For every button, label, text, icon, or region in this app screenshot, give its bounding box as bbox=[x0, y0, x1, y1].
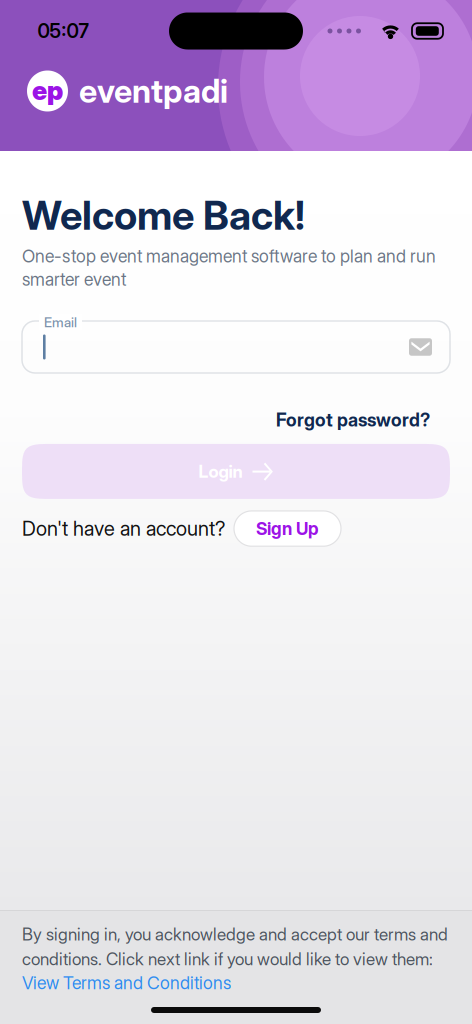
staticText: conditions. Click next link if you would… bbox=[22, 949, 433, 969]
staticText: ep bbox=[32, 75, 63, 106]
staticText: Welcome Back! bbox=[22, 191, 305, 239]
staticText: Sign Up bbox=[256, 518, 319, 539]
staticText: One-stop event management software to pl… bbox=[22, 245, 436, 267]
staticText: Don't have an account? bbox=[22, 516, 225, 541]
staticText: smarter event bbox=[22, 269, 126, 290]
staticText: Email bbox=[44, 314, 77, 330]
staticText: eventpadi bbox=[79, 71, 228, 111]
staticText: View Terms and Conditions bbox=[22, 972, 231, 994]
button[interactable]: Login bbox=[22, 444, 450, 499]
staticText: Forgot password? bbox=[276, 409, 430, 431]
button[interactable]: View Terms and Conditions bbox=[22, 972, 450, 994]
staticText: 05:07 bbox=[37, 19, 88, 43]
staticText: Login bbox=[198, 461, 242, 482]
button[interactable]: Forgot password? bbox=[22, 402, 450, 438]
staticText: By signing in, you acknowledge and accep… bbox=[22, 924, 448, 945]
button[interactable]: Sign Up bbox=[234, 511, 341, 546]
